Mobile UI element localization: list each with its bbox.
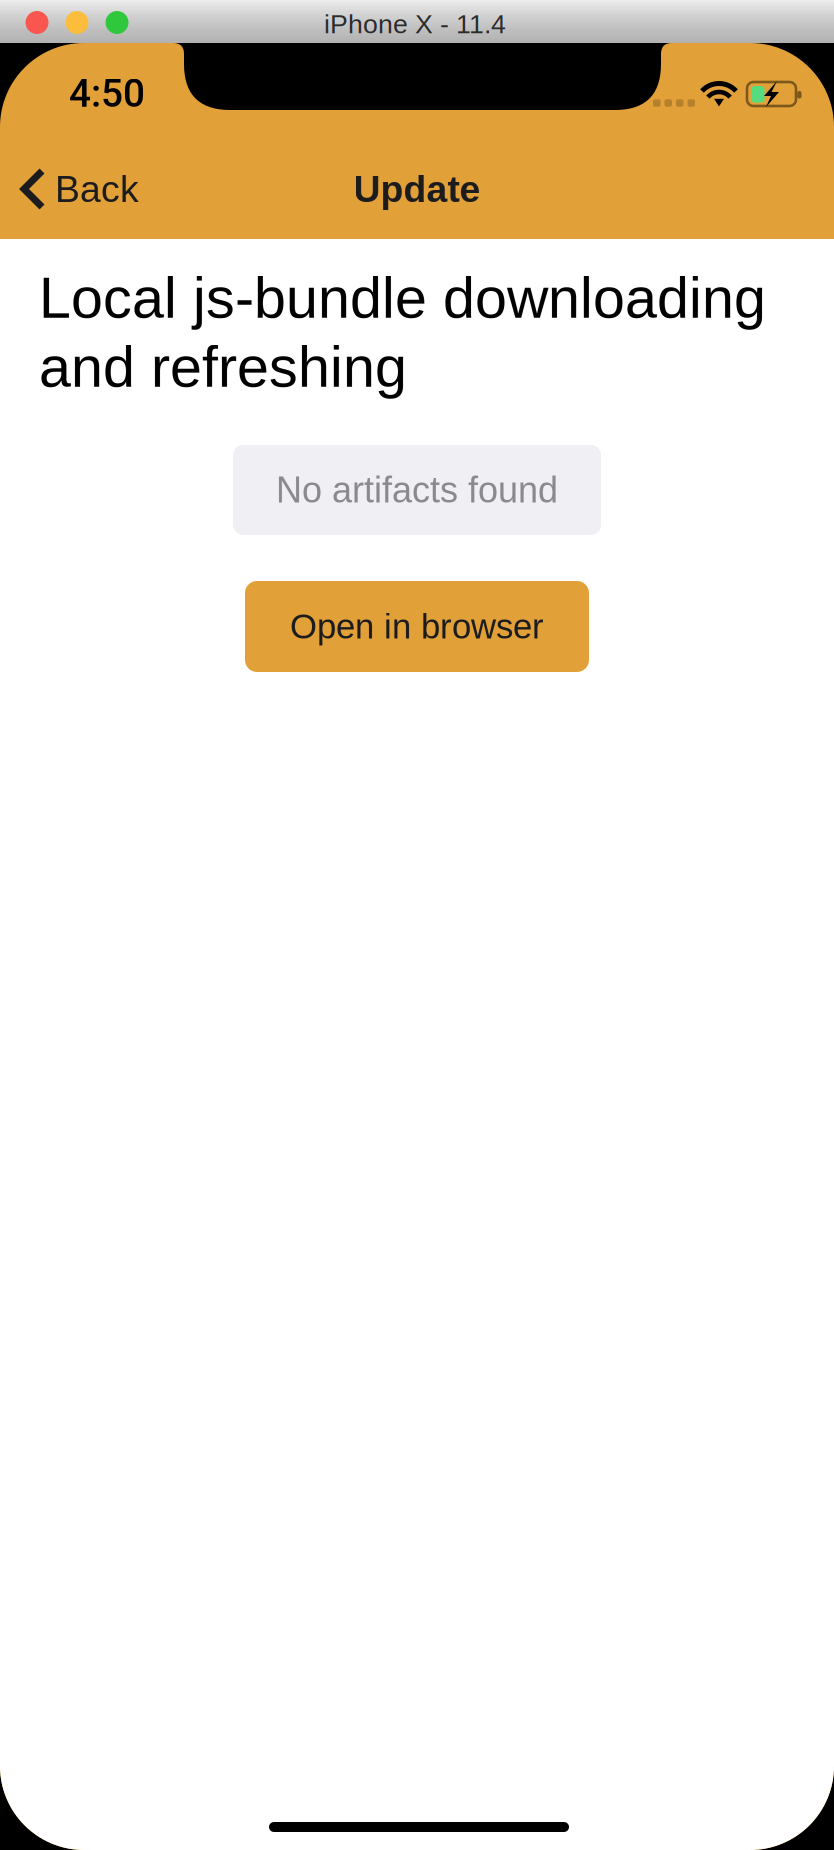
staticText: Back bbox=[55, 168, 139, 210]
button[interactable]: Back bbox=[0, 149, 155, 229]
staticText: iPhone X - 11.4 bbox=[324, 9, 506, 39]
staticText: Local js-bundle downloading bbox=[39, 266, 766, 330]
staticText: Open in browser bbox=[290, 607, 544, 646]
staticText: Update bbox=[353, 168, 480, 210]
button[interactable]: Open in browser bbox=[245, 581, 589, 672]
staticText: 4:50 bbox=[69, 71, 145, 116]
staticText: No artifacts found bbox=[276, 470, 558, 510]
staticText: and refreshing bbox=[39, 335, 407, 399]
